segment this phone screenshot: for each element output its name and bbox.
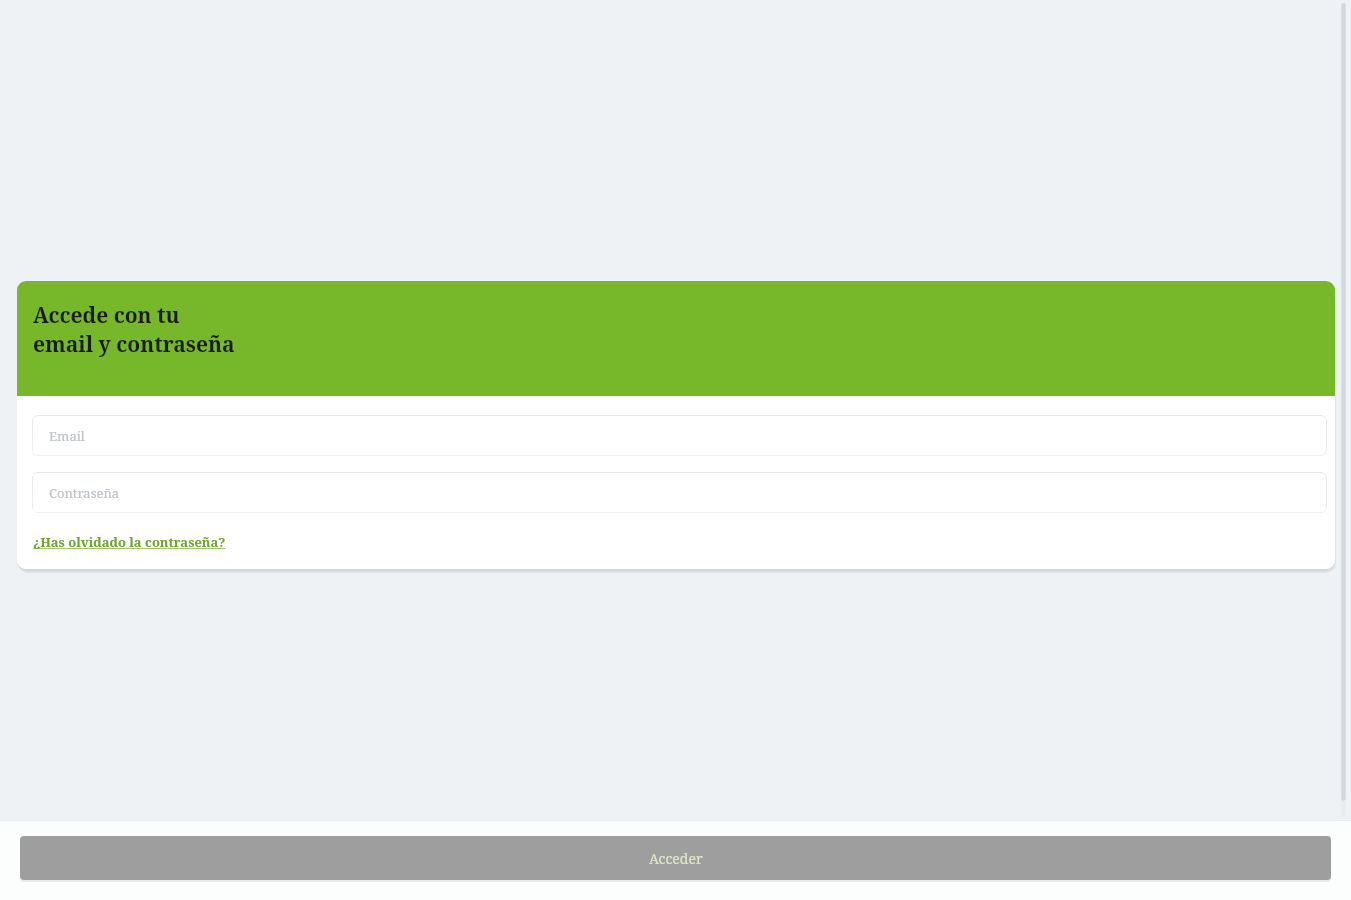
staticText: ¿Has olvidado la contraseña? — [33, 533, 226, 551]
button[interactable]: Contraseña — [32, 472, 1327, 513]
staticText: Email — [49, 427, 85, 445]
staticText: Acceder — [649, 849, 703, 868]
button[interactable]: Email — [32, 415, 1327, 456]
staticText: email y contraseña — [33, 330, 235, 359]
button[interactable]: Acceder — [20, 836, 1331, 880]
staticText: Accede con tu — [33, 301, 180, 330]
staticText: Contraseña — [49, 484, 120, 502]
button[interactable]: ¿Has olvidado la contraseña? — [32, 532, 227, 552]
